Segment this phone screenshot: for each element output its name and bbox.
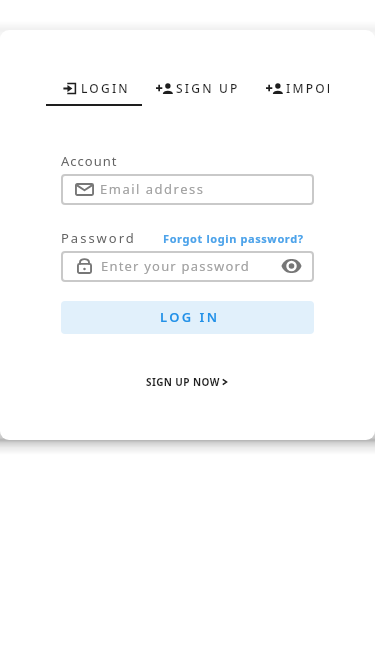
button[interactable]: IMPORT [266, 78, 329, 98]
button[interactable]: LOGIN [61, 78, 130, 98]
button[interactable]: SIGN UP NOW [146, 375, 227, 389]
button[interactable]: Enter your password [61, 251, 314, 282]
staticText: Email address [100, 180, 205, 198]
staticText: LOG IN [160, 308, 220, 326]
staticText: Password [61, 229, 136, 247]
staticText: SIGN UP NOW [146, 375, 220, 389]
button[interactable]: Email address [61, 174, 314, 205]
button[interactable]: Forgot login password? [163, 231, 304, 246]
staticText: Account [61, 152, 118, 170]
button[interactable]: Show password [281, 254, 302, 278]
staticText: Enter your password [101, 257, 281, 275]
staticText: Forgot login password? [163, 231, 304, 246]
button[interactable]: SIGN UP [156, 78, 240, 98]
button[interactable]: LOG IN [61, 301, 314, 334]
staticText: IMPORT [286, 80, 329, 96]
staticText: SIGN UP [176, 80, 240, 96]
staticText: LOGIN [81, 80, 130, 96]
